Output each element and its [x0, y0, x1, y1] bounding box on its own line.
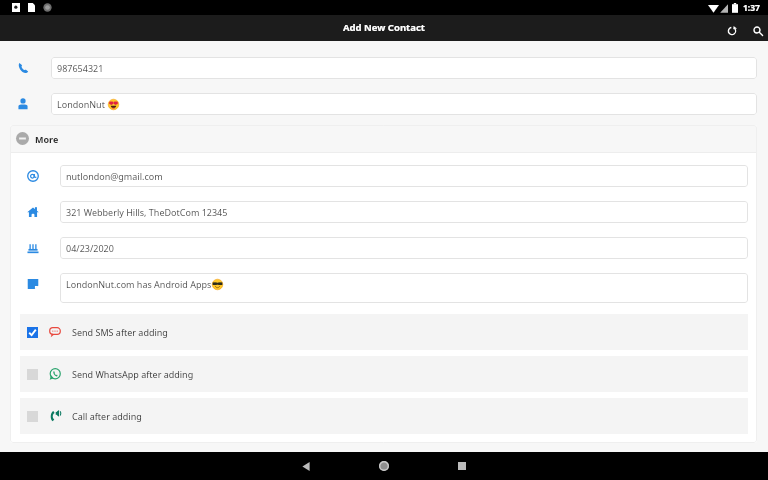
button[interactable]: Refresh — [721, 20, 742, 41]
button[interactable]: Send WhatsApp after adding — [20, 356, 748, 392]
staticText: Call after adding — [72, 410, 142, 422]
button[interactable]: More — [10, 125, 757, 152]
staticText: More — [35, 133, 59, 145]
button[interactable]: Home — [362, 452, 406, 480]
button[interactable]: 04/23/2020 — [60, 237, 748, 259]
button[interactable]: LondonNut.com has Android Apps — [60, 273, 748, 303]
staticText: Send WhatsApp after adding — [72, 368, 194, 380]
staticText: Send SMS after adding — [72, 326, 168, 338]
staticText: 1:37 — [743, 2, 760, 14]
staticText: LondonNut.com has Android Apps — [66, 278, 212, 290]
button[interactable]: 321 Webberly Hills, TheDotCom 12345 — [60, 201, 748, 223]
staticText: Add New Contact — [343, 21, 425, 34]
button[interactable]: LondonNut — [51, 93, 757, 115]
button[interactable]: Search — [747, 20, 768, 41]
button[interactable]: Call after adding — [20, 398, 748, 434]
button[interactable]: 987654321 — [51, 57, 757, 79]
button[interactable]: Back — [284, 452, 328, 480]
staticText: LondonNut — [57, 98, 108, 110]
staticText: 321 Webberly Hills, TheDotCom 12345 — [66, 206, 228, 218]
button[interactable]: Send SMS after adding — [20, 314, 748, 350]
staticText: nutlondon@gmail.com — [66, 170, 163, 182]
button[interactable]: nutlondon@gmail.com — [60, 165, 748, 187]
staticText: 987654321 — [57, 62, 104, 74]
button[interactable]: Recents — [440, 452, 484, 480]
staticText: 04/23/2020 — [66, 242, 114, 254]
